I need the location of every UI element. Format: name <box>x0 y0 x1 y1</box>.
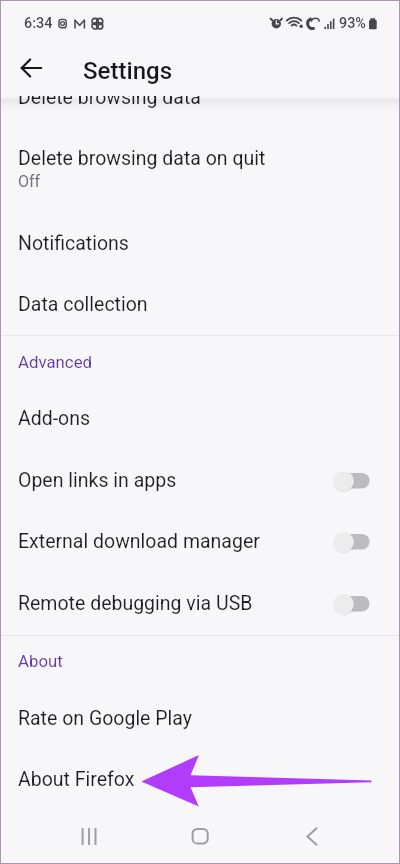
button[interactable] <box>0 396 400 457</box>
staticText: Notifications <box>18 232 129 255</box>
button[interactable] <box>0 220 400 281</box>
button[interactable] <box>0 518 400 579</box>
button[interactable] <box>0 457 400 518</box>
button[interactable] <box>0 135 400 217</box>
staticText: Settings <box>83 57 173 85</box>
staticText: Off <box>18 172 41 191</box>
staticText: External download manager <box>18 530 260 553</box>
staticText: Remote debugging via USB <box>18 592 253 615</box>
staticText: Delete browsing data on quit <box>18 147 266 170</box>
staticText: 6:34 <box>24 15 53 32</box>
staticText: Delete browsing data <box>18 96 201 109</box>
button[interactable]: Home <box>174 812 226 864</box>
button[interactable] <box>0 695 400 756</box>
button[interactable]: Back <box>285 812 337 864</box>
button[interactable] <box>0 281 400 342</box>
staticText: About Firefox <box>18 768 135 791</box>
button[interactable] <box>0 756 400 812</box>
staticText: Open links in apps <box>18 469 177 492</box>
staticText: Advanced <box>18 352 93 372</box>
button[interactable]: Recent apps <box>63 812 115 864</box>
button[interactable] <box>0 96 400 136</box>
staticText: Rate on Google Play <box>18 707 193 730</box>
staticText: Data collection <box>18 293 148 316</box>
staticText: About <box>18 651 63 671</box>
button[interactable] <box>0 580 400 641</box>
staticText: Add-ons <box>18 407 91 430</box>
staticText: 93% <box>339 15 366 32</box>
button[interactable]: Navigate up <box>7 44 55 92</box>
